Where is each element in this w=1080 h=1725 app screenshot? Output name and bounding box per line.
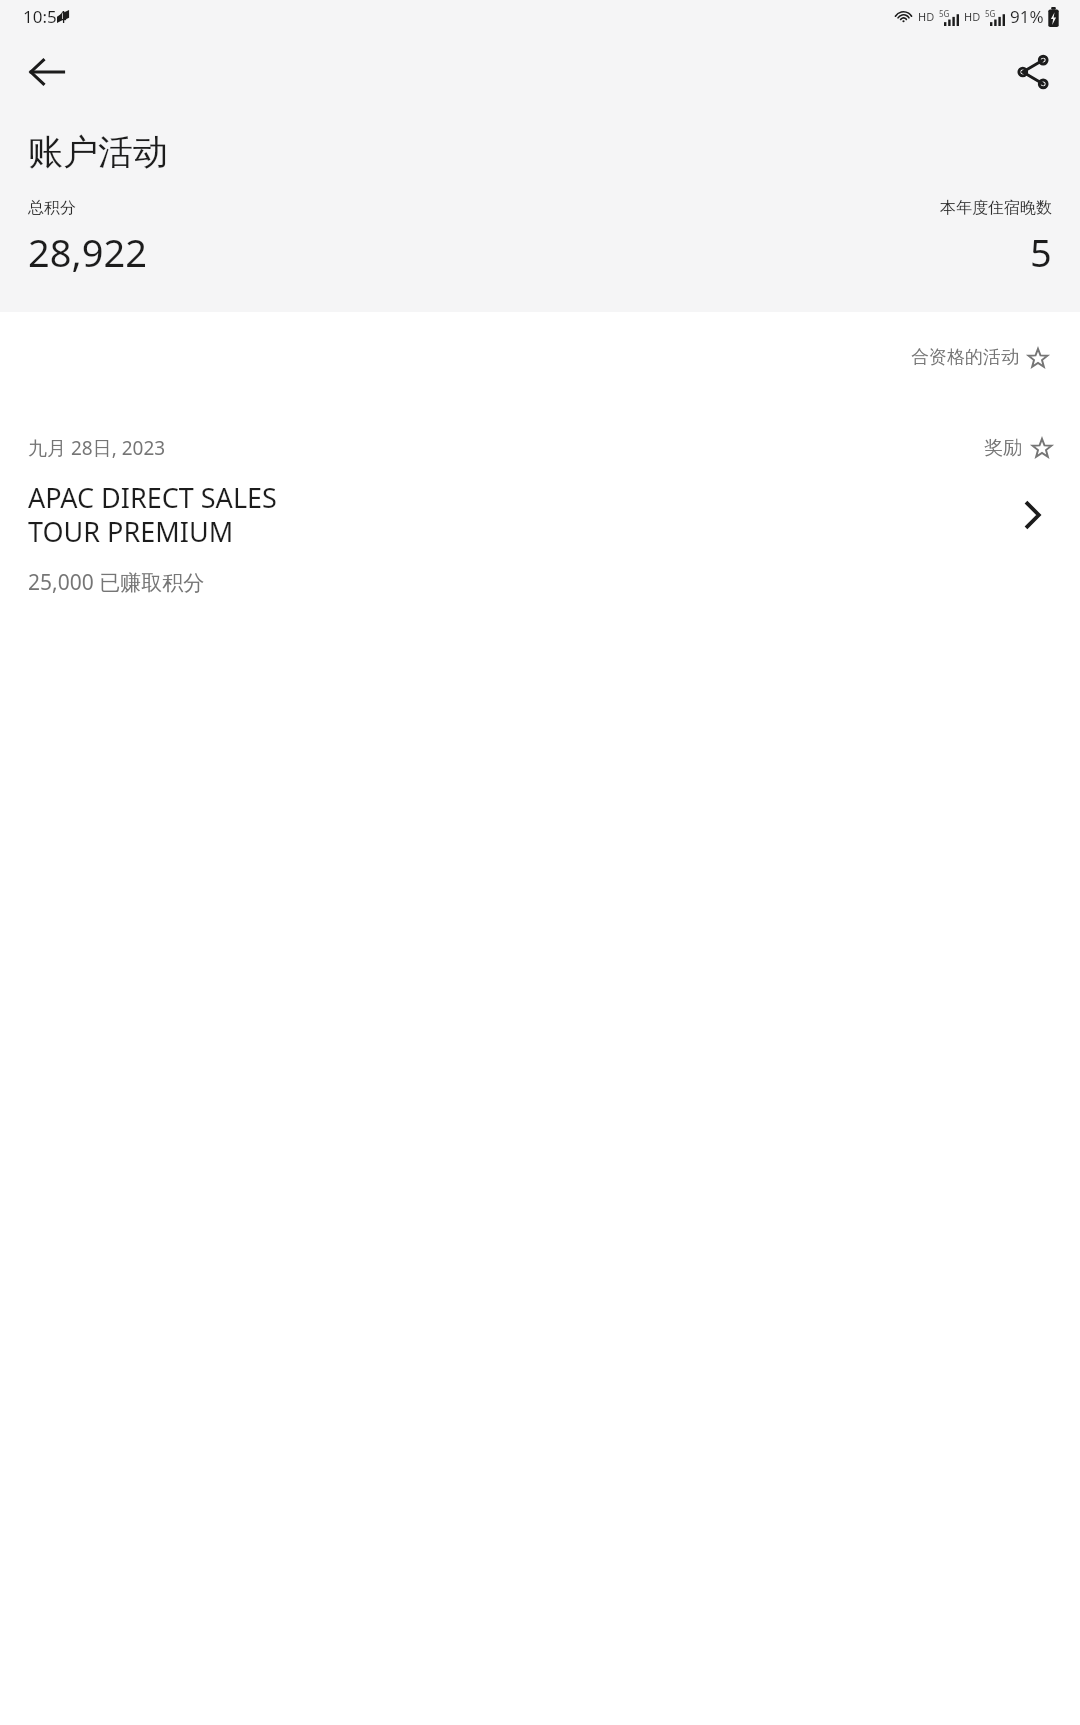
staticText: 奖励	[984, 436, 1022, 460]
staticText: 九月 28日, 2023	[28, 435, 166, 461]
staticText: 5	[1030, 226, 1052, 278]
staticText: 账户活动	[28, 130, 168, 174]
staticText: 总积分	[28, 198, 76, 218]
button[interactable]: 九月 28日, 2023	[0, 431, 1080, 601]
staticText: 25,000 已赚取积分	[28, 568, 205, 597]
staticText: APAC DIRECT SALES TOUR PREMIUM	[28, 479, 303, 550]
staticText: 91%	[1010, 5, 1044, 28]
staticText: 合资格的活动	[911, 346, 1019, 369]
staticText: 10:54	[23, 5, 67, 28]
button[interactable]: 合资格的活动	[907, 340, 1052, 375]
staticText: HD	[964, 9, 981, 24]
button[interactable]: Share	[1006, 45, 1060, 99]
staticText: 28,922	[28, 226, 147, 278]
staticText: HD	[918, 9, 935, 24]
staticText: 5G	[939, 8, 950, 19]
staticText: 本年度住宿晚数	[940, 198, 1052, 218]
button[interactable]: Back	[20, 45, 74, 99]
other: Open details	[1012, 495, 1052, 535]
staticText: 5G	[985, 8, 996, 19]
